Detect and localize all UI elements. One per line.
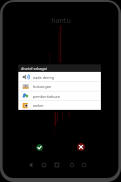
button[interactable]: nada dering: [18, 72, 101, 82]
button[interactable]: hubungan: [18, 81, 101, 91]
button[interactable]: pemberitahuan: [18, 91, 101, 101]
staticText: disetel sebagai: [21, 66, 47, 71]
staticText: hubungan: [33, 84, 51, 89]
button[interactable]: Decline call: [77, 143, 85, 151]
button[interactable]: Accept call: [36, 144, 43, 151]
button[interactable]: weker: [18, 100, 101, 110]
staticText: hantu: [51, 16, 71, 26]
staticText: pemberitahuan: [33, 94, 60, 99]
staticText: nada dering: [33, 75, 55, 80]
staticText: weker: [33, 103, 44, 108]
